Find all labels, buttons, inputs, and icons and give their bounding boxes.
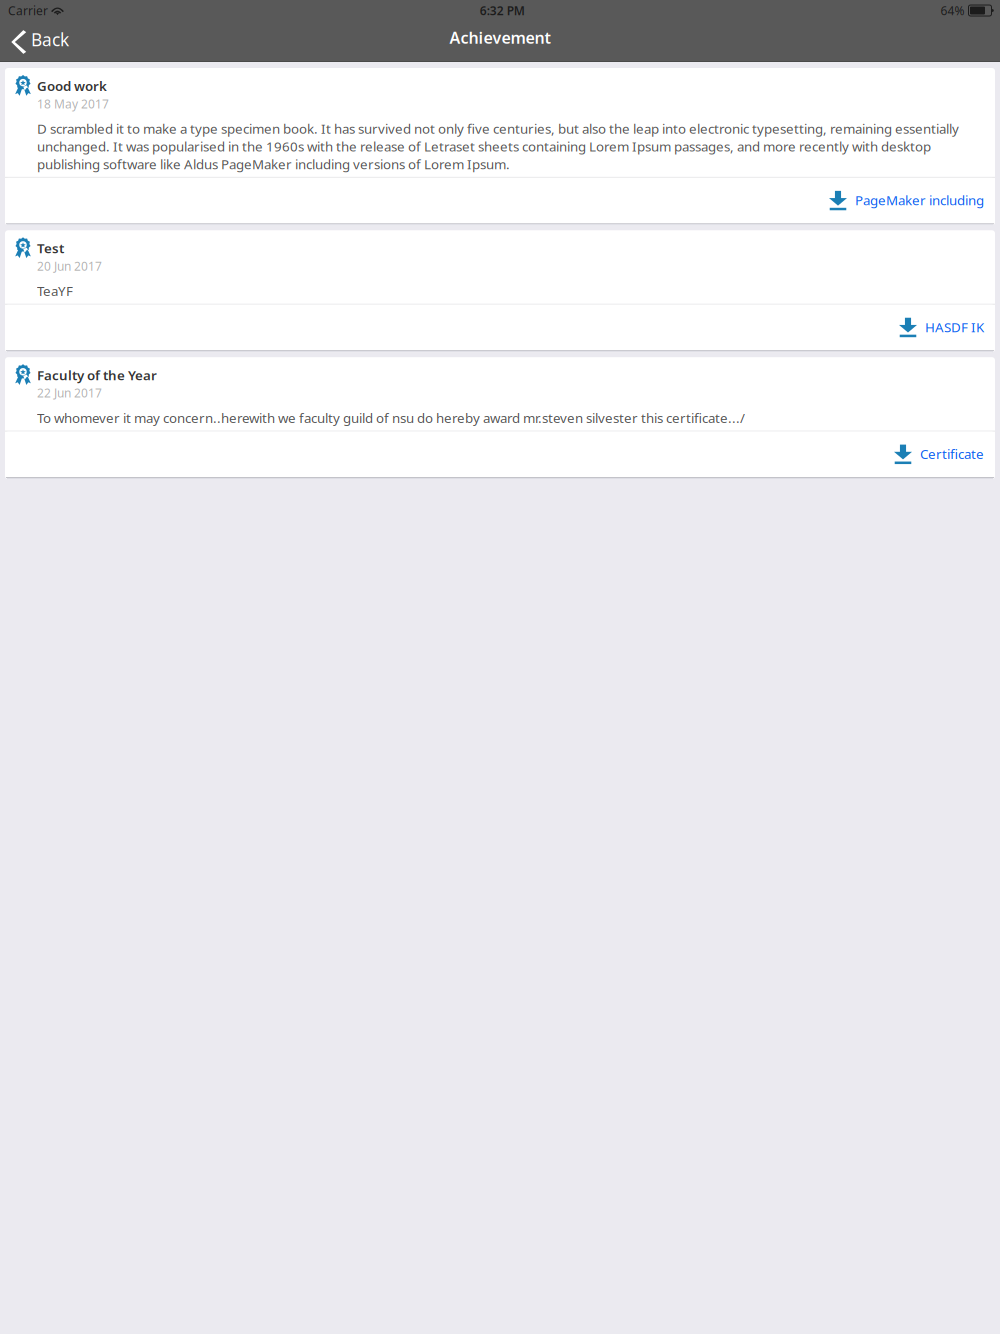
staticText: PageMaker including <box>855 191 984 209</box>
button[interactable]: Back <box>0 24 69 63</box>
staticText: To whomever it may concern..herewith we … <box>37 409 745 427</box>
staticText: Certificate <box>920 445 984 463</box>
button[interactable]: HASDF IK <box>5 305 995 350</box>
button[interactable]: Certificate <box>5 432 995 477</box>
button[interactable]: PageMaker including <box>5 178 995 223</box>
staticText: HASDF IK <box>925 318 984 336</box>
staticText: 18 May 2017 <box>37 96 109 112</box>
staticText: 6:32 PM <box>480 2 525 18</box>
staticText: Achievement <box>449 27 550 48</box>
staticText: 64% <box>940 2 964 18</box>
staticText: Good work <box>37 77 107 95</box>
staticText: Test <box>37 239 64 257</box>
staticText: 22 Jun 2017 <box>37 385 102 401</box>
staticText: D scrambled it to make a type specimen b… <box>37 120 959 173</box>
staticText: Back <box>31 28 69 51</box>
staticText: Carrier <box>8 2 48 18</box>
staticText: TeaYF <box>37 282 73 300</box>
staticText: Faculty of the Year <box>37 366 157 384</box>
staticText: 20 Jun 2017 <box>37 258 102 274</box>
